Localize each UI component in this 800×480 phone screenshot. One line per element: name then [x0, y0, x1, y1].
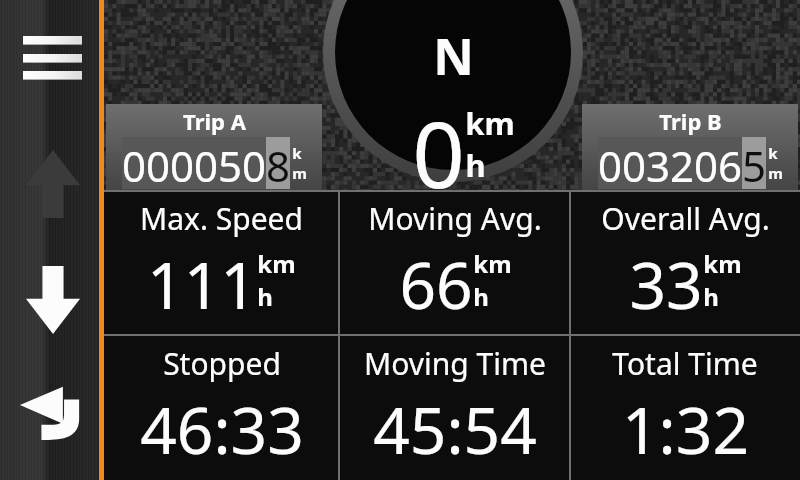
staticText: 1:32 — [622, 386, 749, 473]
staticText: k — [768, 143, 778, 163]
staticText: 0 — [194, 137, 218, 189]
staticText: km — [473, 247, 512, 280]
button[interactable]: Trip B — [582, 104, 798, 190]
staticText: 0 — [412, 90, 465, 215]
staticText: Trip B — [659, 106, 722, 136]
staticText: k — [292, 143, 302, 163]
staticText: km — [703, 247, 742, 280]
staticText: 0 — [598, 137, 622, 189]
staticText: 33 — [629, 241, 703, 328]
button[interactable]: Menu — [20, 30, 86, 86]
staticText: 0 — [242, 137, 266, 189]
staticText: m — [768, 163, 783, 183]
staticText: 0 — [622, 137, 646, 189]
staticText: 0 — [122, 137, 146, 189]
staticText: 66 — [399, 241, 473, 328]
staticText: 45:54 — [373, 386, 537, 473]
staticText: N — [433, 22, 474, 90]
button[interactable]: Back — [17, 378, 91, 450]
button[interactable]: Scroll down — [20, 266, 86, 334]
staticText: 6 — [718, 137, 742, 189]
staticText: h — [703, 280, 719, 313]
staticText: 46:33 — [140, 386, 304, 473]
staticText: 0 — [170, 137, 194, 189]
staticText: 0 — [146, 137, 170, 189]
staticText: Moving Avg. — [368, 198, 542, 239]
staticText: 3 — [646, 137, 670, 189]
button[interactable]: Total Time — [570, 335, 800, 480]
staticText: 0 — [694, 137, 718, 189]
staticText: km — [465, 102, 515, 144]
staticText: Stopped — [163, 343, 281, 384]
staticText: Moving Time — [364, 343, 546, 384]
button[interactable]: Scroll up — [20, 150, 86, 218]
staticText: m — [292, 163, 307, 183]
button[interactable]: N — [325, 22, 581, 215]
staticText: h — [465, 144, 486, 186]
staticText: Total Time — [612, 343, 758, 384]
staticText: km — [257, 247, 296, 280]
staticText: 5 — [742, 137, 766, 189]
button[interactable]: Moving Avg. — [339, 190, 570, 335]
button[interactable]: Stopped — [104, 335, 339, 480]
staticText: Trip A — [183, 106, 246, 136]
staticText: 8 — [266, 137, 290, 189]
staticText: 111 — [147, 241, 257, 328]
button[interactable]: Trip A — [106, 104, 322, 190]
staticText: h — [473, 280, 489, 313]
button[interactable]: Max. Speed — [104, 190, 339, 335]
staticText: 2 — [670, 137, 694, 189]
staticText: Max. Speed — [140, 198, 303, 239]
staticText: 5 — [218, 137, 242, 189]
staticText: h — [257, 280, 273, 313]
staticText: Overall Avg. — [601, 198, 770, 239]
button[interactable]: Overall Avg. — [570, 190, 800, 335]
button[interactable]: Moving Time — [339, 335, 570, 480]
